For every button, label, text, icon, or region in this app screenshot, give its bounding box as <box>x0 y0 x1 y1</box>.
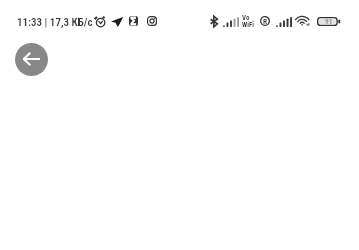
staticText: WiFi <box>242 21 255 29</box>
staticText: 91 <box>325 17 333 25</box>
staticText: R <box>263 17 268 26</box>
button[interactable]: Back <box>15 43 48 76</box>
staticText: Vo <box>242 14 250 22</box>
staticText: 11:33 | 17,3 КБ/с <box>17 16 93 29</box>
staticText: Σ <box>130 16 137 26</box>
